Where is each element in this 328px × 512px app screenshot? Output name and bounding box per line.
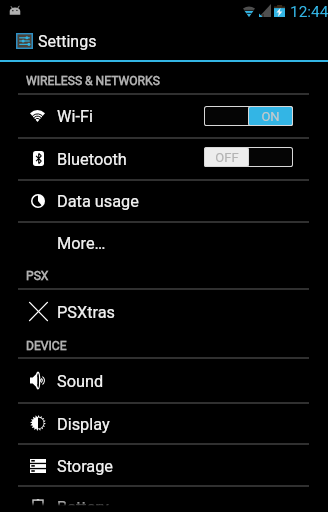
staticText: Data usage <box>57 192 139 211</box>
button[interactable]: Sound <box>0 359 328 402</box>
staticText: Battery <box>57 498 109 512</box>
button[interactable]: Data usage <box>0 180 328 221</box>
button[interactable]: Battery <box>0 485 328 512</box>
other: Settings icon <box>16 33 33 49</box>
staticText: DEVICE <box>26 339 67 353</box>
button[interactable]: PSXtras <box>0 290 328 332</box>
button[interactable]: Turn on <box>204 147 293 167</box>
button[interactable]: Display <box>0 403 328 443</box>
staticText: Display <box>57 415 110 434</box>
staticText: Wi-Fi <box>57 107 93 126</box>
staticText: OFF <box>215 150 239 165</box>
staticText: 12:44 <box>290 3 328 21</box>
staticText: More… <box>57 234 106 253</box>
button[interactable]: Settings icon <box>0 22 328 60</box>
staticText: Settings <box>38 32 97 51</box>
staticText: ON <box>261 109 280 124</box>
staticText: Bluetooth <box>57 150 127 169</box>
staticText: PSX <box>26 269 49 283</box>
staticText: Storage <box>57 457 114 476</box>
staticText: WIRELESS & NETWORKS <box>26 74 160 88</box>
staticText: Sound <box>57 372 104 391</box>
button[interactable]: Turn off <box>204 106 293 126</box>
button[interactable]: Storage <box>0 445 328 486</box>
button[interactable]: Wi-Fi <box>0 94 328 137</box>
button[interactable]: Bluetooth <box>0 138 328 179</box>
staticText: PSXtras <box>57 303 115 322</box>
button[interactable]: More… <box>0 222 328 263</box>
